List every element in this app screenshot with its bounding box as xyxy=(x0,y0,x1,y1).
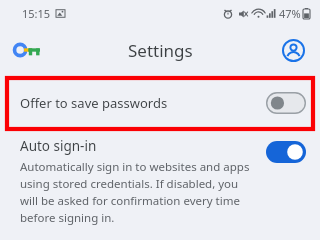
staticText: 47% xyxy=(279,6,301,21)
staticText: Settings xyxy=(128,39,193,62)
staticText: Offer to save passwords xyxy=(20,94,266,112)
button[interactable]: Google Password Manager xyxy=(10,33,44,67)
staticText: Automatically sign in to websites and ap… xyxy=(20,159,256,226)
staticText: Auto sign-in xyxy=(20,137,97,155)
button[interactable]: Offer to save passwords xyxy=(0,74,320,131)
button[interactable]: Auto sign-in xyxy=(0,131,320,226)
staticText: 15:15 xyxy=(22,6,51,21)
button[interactable]: Offer to save passwords, off xyxy=(266,92,306,114)
button[interactable]: Account xyxy=(276,33,310,67)
button[interactable]: Auto sign-in, on xyxy=(266,141,306,163)
